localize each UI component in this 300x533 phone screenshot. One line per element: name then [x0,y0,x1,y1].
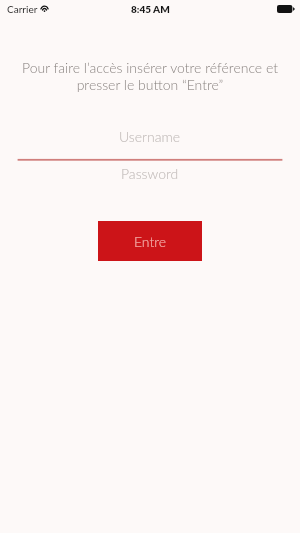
staticText: Entre [134,233,167,250]
other: Battery [277,5,295,13]
staticText: 8:45 AM [131,3,170,15]
button[interactable]: Username [17,128,283,164]
staticText: Username [119,128,181,145]
staticText: Pour faire l’accès insérer votre référen… [20,59,280,93]
staticText: Carrier [7,3,38,15]
other: Wi-Fi [40,4,49,12]
staticText: Password [121,165,179,182]
button[interactable]: Password [17,165,283,201]
button[interactable]: Entre [98,221,202,261]
